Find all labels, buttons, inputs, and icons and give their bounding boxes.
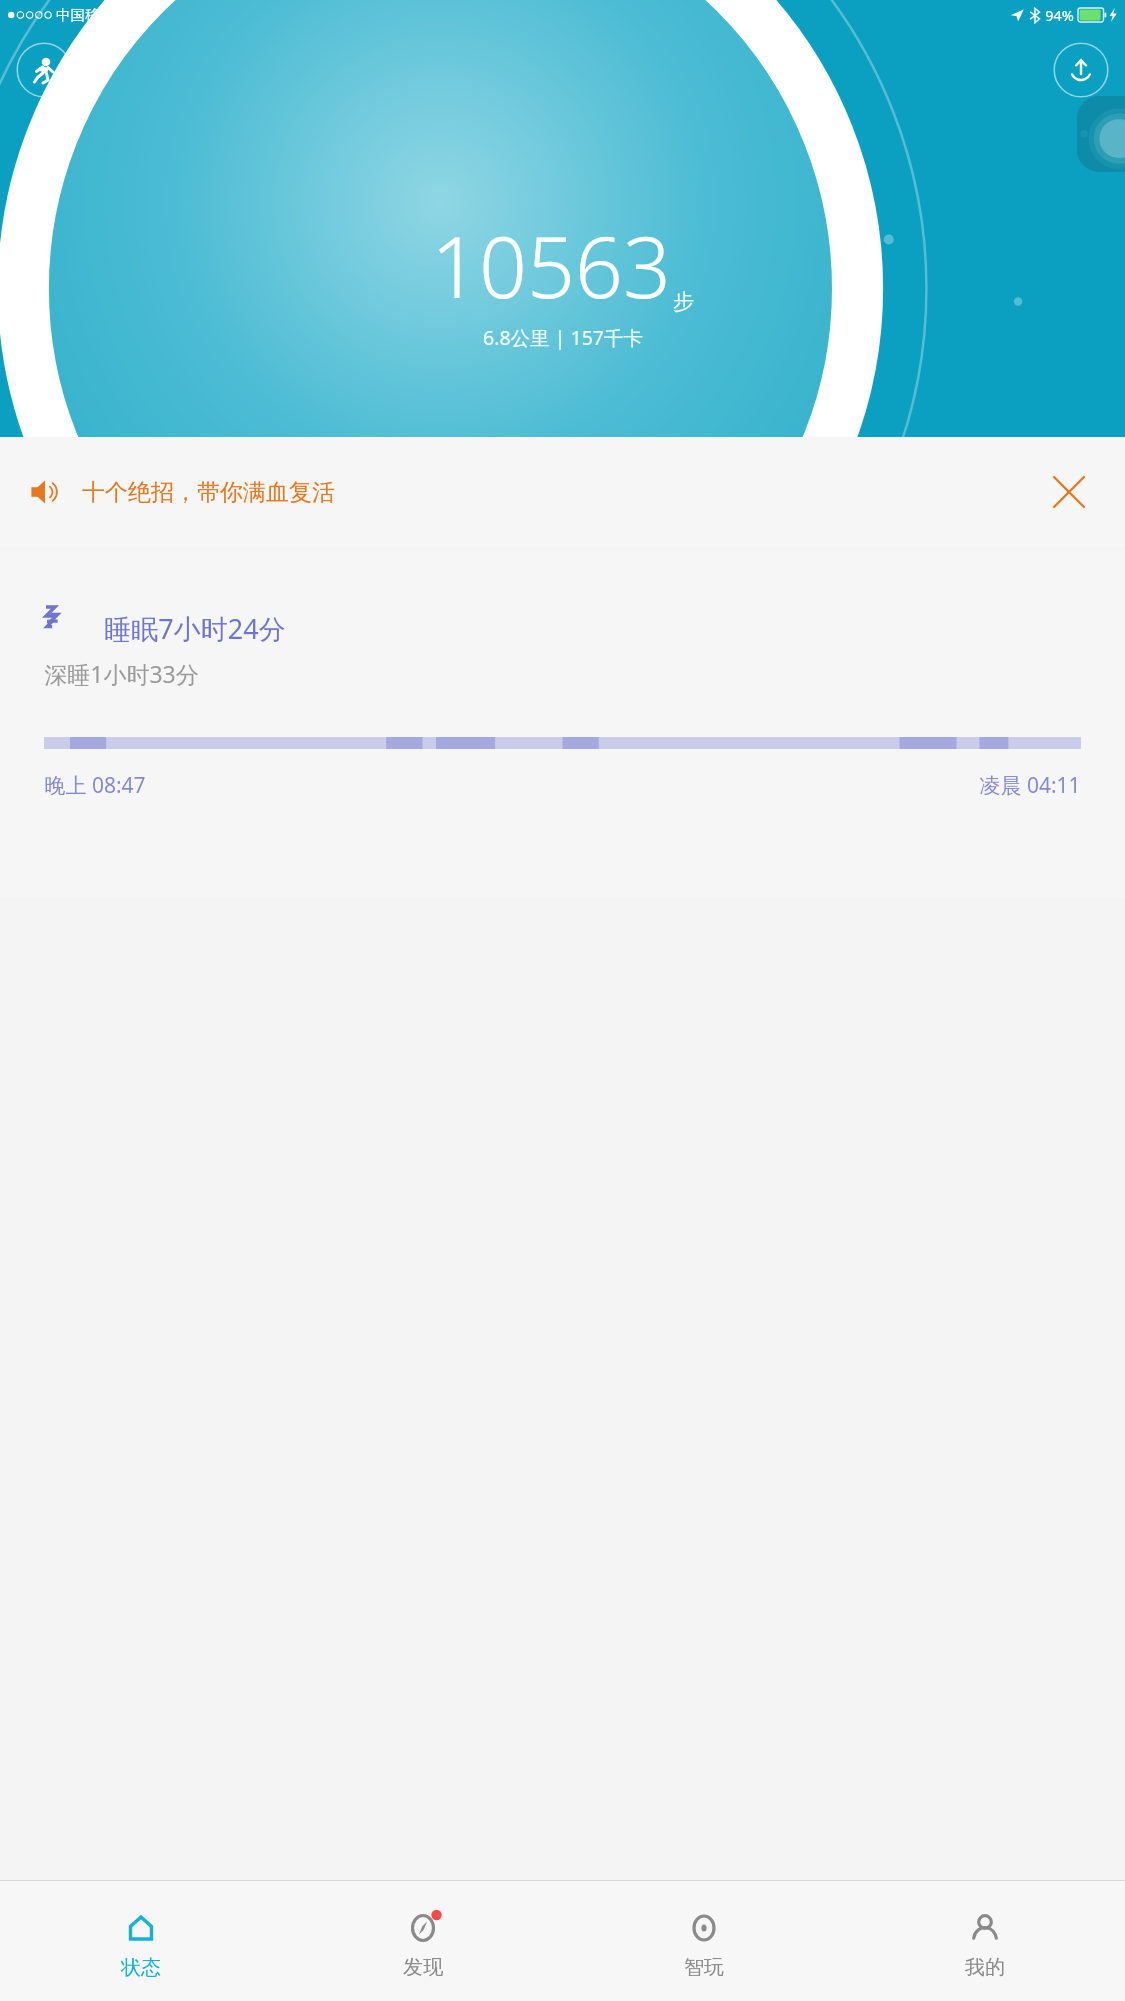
- staticText: 6.8公里 | 157千卡: [483, 324, 643, 351]
- button[interactable]: 十个绝招，带你满血复活: [0, 437, 1125, 547]
- button[interactable]: Close: [1041, 464, 1097, 520]
- staticText: 10563: [431, 208, 671, 322]
- button[interactable]: 睡眠7小时24分: [0, 552, 1125, 897]
- staticText: 中国移动: [56, 6, 114, 24]
- staticText: 94%: [1045, 5, 1074, 25]
- button[interactable]: 我的: [844, 1881, 1125, 2001]
- button[interactable]: Share: [1053, 42, 1109, 98]
- button[interactable]: 发现: [282, 1881, 563, 2001]
- staticText: 小米运动: [513, 54, 613, 85]
- staticText: 智玩: [684, 1955, 724, 1980]
- staticText: 我的: [965, 1955, 1005, 1980]
- staticText: 状态: [121, 1955, 161, 1980]
- button[interactable]: Device: [1077, 96, 1125, 172]
- staticText: 凌晨 04:11: [979, 771, 1081, 800]
- staticText: 发现: [403, 1955, 443, 1980]
- button[interactable]: 智玩: [563, 1881, 844, 2001]
- staticText: 步: [673, 289, 694, 315]
- button[interactable]: Start workout: [16, 42, 72, 98]
- staticText: 晚上 08:47: [44, 771, 146, 800]
- staticText: 深睡1小时33分: [44, 658, 199, 689]
- button[interactable]: 状态: [0, 1881, 282, 2001]
- staticText: 十个绝招，带你满血复活: [82, 478, 335, 507]
- staticText: 睡眠7小时24分: [104, 610, 286, 647]
